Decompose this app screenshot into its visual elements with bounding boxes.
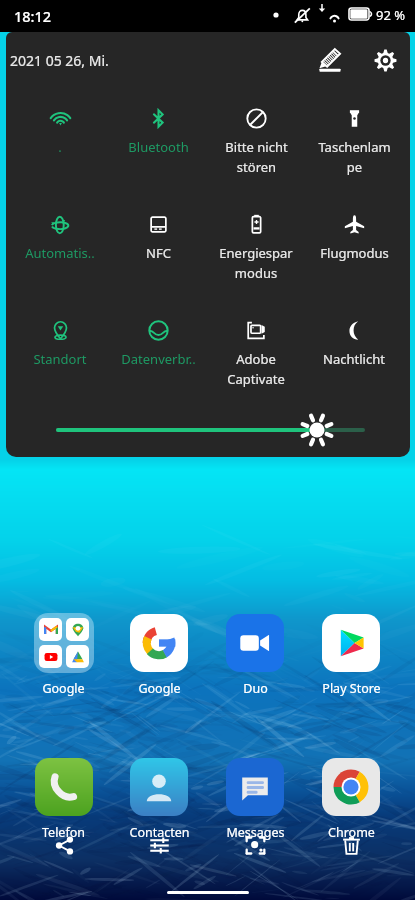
staticText: Play Store <box>322 680 381 697</box>
staticText: Flugmodus <box>320 244 389 262</box>
button[interactable]: . <box>11 88 109 194</box>
staticText: . <box>58 138 62 156</box>
button[interactable]: Tune <box>137 823 181 867</box>
staticText: Contacten <box>129 824 190 841</box>
staticText: 92 % <box>376 6 406 24</box>
button[interactable]: Standort <box>11 300 109 406</box>
button[interactable]: Messages <box>207 757 303 841</box>
staticText: Bitte nicht stören <box>225 138 288 176</box>
staticText: 2021 05 26, Mi. <box>10 51 109 70</box>
button[interactable]: Bluetooth <box>109 88 207 194</box>
staticText: Chrome <box>328 824 375 841</box>
button[interactable]: Settings <box>366 41 404 79</box>
staticText: NFC <box>146 244 171 262</box>
button[interactable]: Duo <box>207 613 303 697</box>
staticText: Energiespar modus <box>219 244 293 282</box>
button[interactable]: Play Store <box>303 613 399 697</box>
button[interactable]: Brightness <box>6 410 410 450</box>
button[interactable]: Taschenlam pe <box>305 88 403 194</box>
staticText: Google <box>138 680 181 697</box>
staticText: Standort <box>33 350 87 368</box>
staticText: Adobe Captivate <box>227 350 285 388</box>
button[interactable]: Bitte nicht stören <box>207 88 305 194</box>
button[interactable]: Contacten <box>111 757 207 841</box>
button[interactable]: Edit <box>311 41 349 79</box>
staticText: Automatis.. <box>25 244 95 262</box>
button[interactable]: Google <box>16 613 111 697</box>
staticText: Google <box>42 680 85 697</box>
button[interactable]: Adobe Captivate <box>207 300 305 406</box>
staticText: Telefon <box>42 824 85 841</box>
button[interactable]: Telefon <box>16 757 111 841</box>
button[interactable]: Lens <box>233 823 277 867</box>
button[interactable]: Energiespar modus <box>207 194 305 300</box>
staticText: 18:12 <box>14 6 52 26</box>
button[interactable]: Datenverbr.. <box>109 300 207 406</box>
button[interactable]: Nachtlicht <box>305 300 403 406</box>
button[interactable]: Chrome <box>303 757 399 841</box>
staticText: Messages <box>226 824 285 841</box>
staticText: Nachtlicht <box>323 350 385 368</box>
button[interactable]: Flugmodus <box>305 194 403 300</box>
button[interactable]: Delete <box>329 823 373 867</box>
staticText: Datenverbr.. <box>121 350 196 368</box>
button[interactable]: Share <box>42 823 86 867</box>
button[interactable]: NFC <box>109 194 207 300</box>
button[interactable]: Automatis.. <box>11 194 109 300</box>
button[interactable]: Google <box>111 613 207 697</box>
staticText: Duo <box>243 680 268 697</box>
staticText: Taschenlam pe <box>318 138 391 176</box>
staticText: Bluetooth <box>128 138 189 156</box>
